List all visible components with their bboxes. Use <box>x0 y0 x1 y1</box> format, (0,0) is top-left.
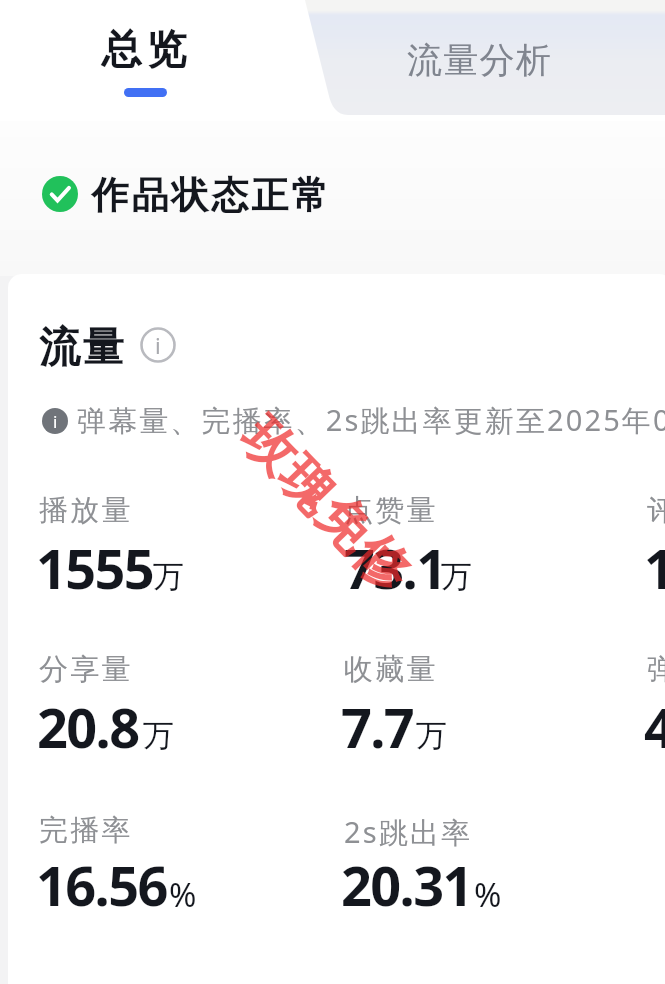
staticText: i <box>155 330 161 360</box>
staticText: 评论量 <box>647 492 665 529</box>
button[interactable]: 分享量 <box>34 641 324 759</box>
button[interactable]: 总览 <box>0 0 296 117</box>
staticText: 万 <box>153 557 184 596</box>
staticText: 4 <box>644 690 665 764</box>
button[interactable]: 弹幕量 <box>642 641 665 759</box>
staticText: 点赞量 <box>344 492 438 529</box>
staticText: 总览 <box>99 24 189 74</box>
staticText: 弹幕量、完播率、2s跳出率更新至2025年0 <box>77 400 665 440</box>
staticText: 播放量 <box>39 492 133 529</box>
staticText: 2s跳出率 <box>344 812 473 852</box>
staticText: 完播率 <box>39 812 133 849</box>
staticText: i <box>53 410 58 433</box>
button[interactable]: 评论量 <box>642 482 665 600</box>
staticText: 玫瑰免修 <box>227 404 425 606</box>
staticText: 20.31 <box>341 848 472 922</box>
staticText: 1 <box>644 531 665 605</box>
staticText: 20.8 <box>37 690 139 764</box>
staticText: 弹幕量 <box>647 651 665 688</box>
button[interactable]: 播放量 <box>34 482 324 600</box>
button[interactable]: 点赞量 <box>339 482 629 600</box>
button[interactable]: 作品状态正常 <box>38 166 334 222</box>
button[interactable]: 收藏量 <box>339 641 629 759</box>
staticText: 万 <box>143 716 174 755</box>
staticText: 收藏量 <box>344 651 438 688</box>
staticText: 流量分析 <box>407 38 553 82</box>
staticText: 1555 <box>36 531 154 605</box>
button[interactable]: 流量分析 <box>296 0 665 121</box>
staticText: 流量 <box>38 322 125 374</box>
staticText: 作品状态正常 <box>90 172 330 219</box>
staticText: 分享量 <box>39 651 133 688</box>
staticText: 7.7 <box>341 690 414 764</box>
button[interactable]: 完播率 <box>34 802 324 920</box>
staticText: 73.1 <box>344 531 446 605</box>
staticText: % <box>169 872 197 917</box>
button[interactable]: 流量说明 <box>140 327 176 363</box>
staticText: % <box>474 872 502 917</box>
button[interactable]: 2s跳出率 <box>339 802 629 920</box>
staticText: 万 <box>441 557 472 596</box>
staticText: 16.56 <box>36 848 167 922</box>
staticText: 万 <box>416 716 447 755</box>
